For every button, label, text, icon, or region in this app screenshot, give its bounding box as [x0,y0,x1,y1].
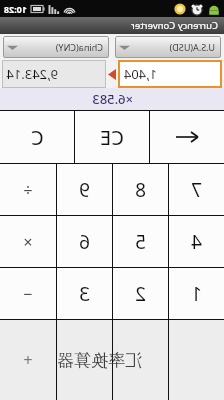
button[interactable]: CE [75,111,149,163]
button[interactable]: U.S.A(USD) [115,36,221,58]
staticText: 8 [135,177,146,203]
button[interactable]: 1 [169,268,224,319]
button[interactable]: 9 [57,164,112,215]
button[interactable]: 7 [169,164,224,215]
staticText: 10:28 [3,3,27,15]
staticText: 7 [191,177,202,203]
staticText: 2 [135,281,146,307]
staticText: 9 [79,177,90,203]
staticText: × [23,231,33,253]
staticText: 1,404 [123,65,157,83]
staticText: 5 [135,229,146,255]
button[interactable]: C [0,111,74,163]
staticText: 汇率换算器 [57,350,142,371]
staticText: Currency Converter [130,19,218,32]
button[interactable]: China(CNY) [3,36,109,58]
button[interactable]: 4 [169,216,224,267]
button[interactable]: ÷ [0,164,56,215]
button[interactable]: − [0,268,56,319]
button[interactable]: 9,243.14 [2,60,106,88]
staticText: U.S.A(USD) [169,41,215,53]
staticText: 3 [79,281,90,307]
staticText: 6 [79,229,90,255]
button[interactable]: 2 [113,268,168,319]
button[interactable] [113,320,168,400]
button[interactable]: Backspace [150,111,224,163]
staticText: − [23,283,33,305]
button[interactable] [57,320,112,400]
button[interactable]: × [0,216,56,267]
staticText: 9,243.14 [6,65,58,83]
button[interactable]: 3 [57,268,112,319]
staticText: ×6.583 [92,90,133,108]
button[interactable]: 1,404 [118,60,222,88]
staticText: 4 [191,229,202,255]
button[interactable]: + [0,320,56,400]
button[interactable]: 5 [113,216,168,267]
staticText: 1 [191,281,202,307]
staticText: China(CNY) [55,41,103,53]
staticText: C [31,124,44,151]
staticText: CE [100,124,124,151]
staticText: ÷ [23,179,33,201]
staticText: + [23,349,33,371]
button[interactable]: 8 [113,164,168,215]
button[interactable]: 6 [57,216,112,267]
